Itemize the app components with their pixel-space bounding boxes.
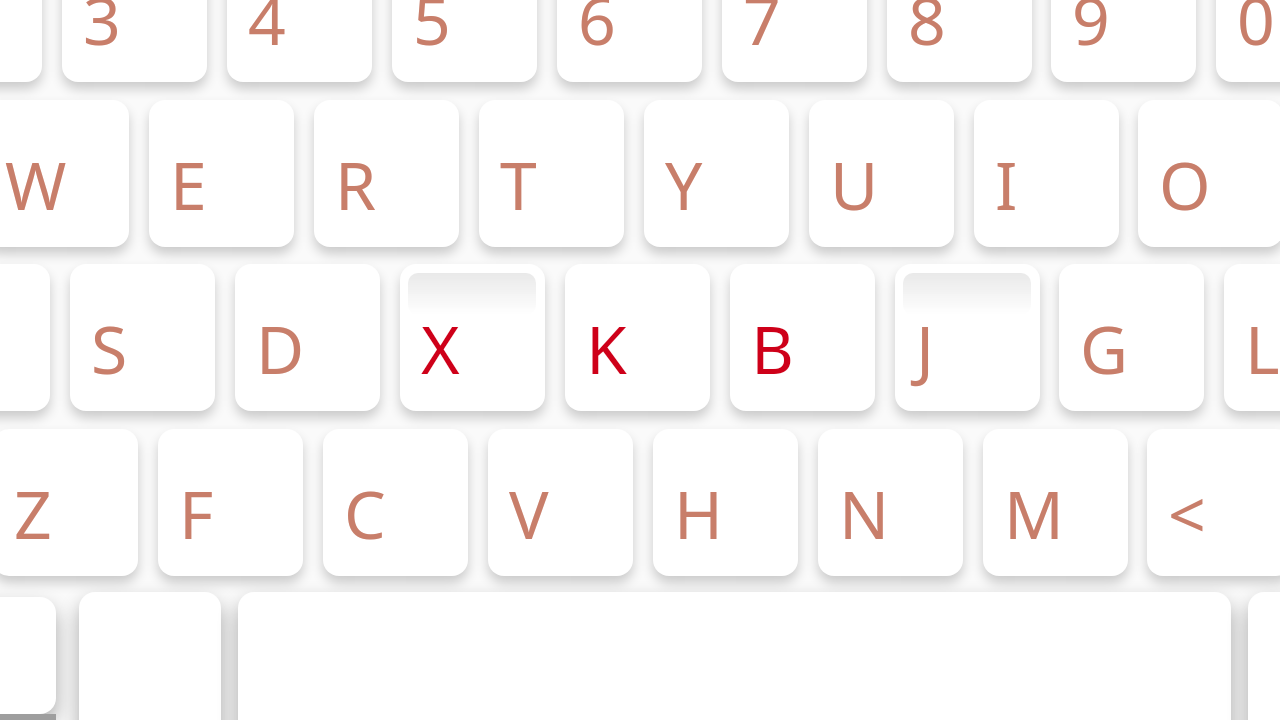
staticText: < (1168, 468, 1206, 558)
button[interactable] (0, 0, 42, 82)
staticText: O (1159, 139, 1211, 229)
staticText: H (674, 468, 723, 558)
staticText: V (509, 468, 549, 558)
staticText: J (916, 303, 935, 393)
staticText: 9 (1072, 0, 1110, 64)
button[interactable]: K (565, 264, 710, 411)
button[interactable]: 3 (62, 0, 207, 82)
button[interactable]: 5 (392, 0, 537, 82)
button[interactable] (0, 597, 56, 714)
staticText: Z (14, 468, 52, 558)
staticText: T (500, 139, 537, 229)
button[interactable]: X (400, 264, 545, 411)
button[interactable]: Y (644, 100, 789, 247)
button[interactable]: L (1224, 264, 1280, 411)
button[interactable]: H (653, 429, 798, 576)
staticText: U (830, 139, 879, 229)
button[interactable]: D (235, 264, 380, 411)
button[interactable]: N (818, 429, 963, 576)
button[interactable]: 4 (227, 0, 372, 82)
staticText: 7 (743, 0, 781, 64)
staticText: Y (665, 139, 703, 229)
button[interactable]: O (1138, 100, 1280, 247)
staticText: G (1080, 303, 1129, 393)
button[interactable]: S (70, 264, 215, 411)
button[interactable]: G (1059, 264, 1204, 411)
staticText: W (5, 139, 67, 229)
button[interactable]: U (809, 100, 954, 247)
staticText: 3 (83, 0, 121, 64)
staticText: 4 (248, 0, 286, 64)
button[interactable]: 9 (1051, 0, 1196, 82)
button[interactable]: 0 (1216, 0, 1280, 82)
button[interactable]: V (488, 429, 633, 576)
staticText: F (179, 468, 214, 558)
button[interactable]: W (0, 100, 129, 247)
button[interactable]: < (1147, 429, 1280, 576)
staticText: E (170, 139, 207, 229)
staticText: 5 (413, 0, 451, 64)
button[interactable]: B (730, 264, 875, 411)
button[interactable]: J (895, 264, 1040, 411)
staticText: B (751, 303, 794, 393)
staticText: K (586, 303, 627, 393)
staticText: 6 (578, 0, 616, 64)
staticText: D (256, 303, 305, 393)
button[interactable]: E (149, 100, 294, 247)
button[interactable]: 8 (887, 0, 1032, 82)
button[interactable]: T (479, 100, 624, 247)
button[interactable]: 7 (722, 0, 867, 82)
button[interactable]: 6 (557, 0, 702, 82)
button[interactable]: M (983, 429, 1128, 576)
button[interactable]: C (323, 429, 468, 576)
staticText: R (335, 139, 377, 229)
staticText: M (1004, 468, 1064, 558)
button[interactable]: Z (0, 429, 138, 576)
button[interactable]: R (314, 100, 459, 247)
button[interactable]: F (158, 429, 303, 576)
staticText: X (421, 303, 460, 393)
staticText: S (91, 303, 128, 393)
staticText: C (344, 468, 386, 558)
staticText: L (1245, 303, 1280, 393)
button[interactable]: I (974, 100, 1119, 247)
staticText: 0 (1237, 0, 1275, 64)
staticText: N (839, 468, 890, 558)
staticText: 8 (908, 0, 946, 64)
staticText: I (995, 139, 1018, 229)
